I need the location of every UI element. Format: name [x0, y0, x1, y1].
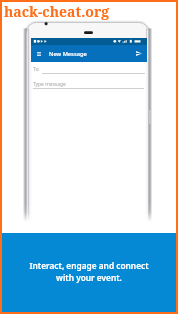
staticText: Interact, engage and connect with your e… [0, 260, 178, 283]
button[interactable]: Open navigation menu [31, 45, 46, 62]
staticText: hack-cheat.org [4, 2, 110, 21]
staticText: New Message [49, 50, 87, 58]
staticText: To: [33, 66, 40, 73]
button[interactable]: Send message [130, 45, 147, 62]
button[interactable]: To: [33, 66, 146, 75]
button[interactable]: Type message [33, 81, 146, 90]
staticText: Type message [33, 81, 66, 88]
